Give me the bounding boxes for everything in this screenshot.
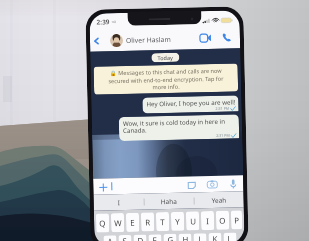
staticText: Hey Oliver, I hope you are well! [146, 97, 235, 107]
button[interactable]: Voice message [227, 177, 239, 190]
staticText: F [152, 234, 158, 241]
staticText: ◅ [111, 18, 116, 24]
button[interactable]: Yeah [194, 191, 244, 208]
button[interactable]: T [156, 212, 169, 231]
staticText: Wow, it sure is cold today in here in Ca… [123, 116, 236, 135]
button[interactable]: I [201, 211, 214, 230]
button[interactable]: A [103, 235, 117, 241]
staticText: D [137, 235, 144, 241]
staticText: I [206, 215, 209, 226]
button[interactable]: Camera [206, 178, 218, 190]
staticText: 🔒 Messages to this chat and calls are no… [101, 66, 231, 91]
staticText: Yeah [211, 196, 227, 205]
button[interactable]: J [193, 233, 207, 241]
staticText: Q [99, 217, 106, 229]
staticText: Oliver Haslam [126, 35, 171, 45]
button[interactable]: H [178, 233, 192, 241]
staticText: H [182, 233, 189, 241]
staticText: R [145, 216, 150, 227]
button[interactable]: I [93, 194, 144, 211]
button[interactable]: S [118, 235, 132, 241]
button[interactable]: Y [171, 212, 184, 231]
staticText: K [212, 233, 218, 241]
button[interactable]: U [186, 211, 199, 231]
button[interactable]: P [231, 210, 242, 229]
staticText: A [107, 235, 114, 241]
button[interactable]: Stickers [185, 178, 197, 191]
staticText: 2:39 [96, 17, 110, 27]
button[interactable]: D [133, 234, 147, 241]
staticText: Haha [161, 197, 178, 206]
button[interactable]: E [126, 213, 139, 232]
button[interactable]: L [223, 232, 237, 241]
button[interactable]: O [216, 211, 229, 230]
staticText: T [160, 216, 165, 227]
button[interactable]: Video call [198, 31, 212, 45]
button[interactable]: F [148, 234, 162, 241]
staticText: P [234, 214, 239, 225]
button[interactable]: Add attachment [97, 181, 108, 192]
button[interactable]: Back [91, 35, 102, 47]
staticText: E [130, 217, 135, 228]
staticText: G [167, 234, 174, 241]
staticText: U [190, 215, 196, 226]
button[interactable]: Call [220, 30, 234, 45]
button[interactable]: R [141, 212, 154, 232]
button[interactable]: K [208, 233, 222, 241]
button[interactable]: W [111, 213, 124, 232]
staticText: 2:31 PM [216, 133, 230, 138]
staticText: W [114, 217, 122, 228]
staticText: I [118, 198, 121, 207]
staticText: 2:31 PM [215, 106, 230, 111]
staticText: J [198, 233, 202, 241]
staticText: Today [157, 54, 173, 61]
staticText: O [219, 215, 226, 226]
button[interactable]: G [163, 234, 177, 241]
staticText: Y [175, 216, 180, 227]
staticText: L [227, 232, 233, 241]
staticText: S [122, 235, 128, 241]
button[interactable]: Q [96, 213, 109, 233]
button[interactable]: Haha [144, 192, 194, 209]
